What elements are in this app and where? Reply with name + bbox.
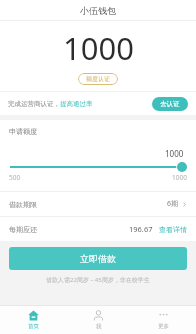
staticText: 借款人需22周岁－45周岁，非在校学生 <box>46 276 150 284</box>
staticText: 申请额度 <box>9 127 37 136</box>
staticText: 额度认证 <box>86 75 110 83</box>
staticText: 完成运营商认证， <box>8 100 60 108</box>
staticText: 小伍钱包 <box>80 5 116 16</box>
staticText: 6期 <box>167 199 179 209</box>
button[interactable]: 额度认证 <box>78 73 118 85</box>
button[interactable]: 借款期限 <box>0 192 196 216</box>
staticText: 1000 <box>63 27 134 69</box>
button[interactable]: More <box>131 306 196 334</box>
staticText: 更多 <box>158 323 169 330</box>
staticText: 去认证 <box>160 100 180 108</box>
staticText: 1000 <box>165 148 184 159</box>
staticText: 借款期限 <box>9 200 37 209</box>
staticText: 196.67 <box>129 224 153 234</box>
staticText: 1000 <box>172 173 187 182</box>
staticText: 每期应还 <box>9 225 37 234</box>
button[interactable]: 查看详情 <box>159 225 187 234</box>
button[interactable]: 立即借款 <box>9 247 187 270</box>
button[interactable]: Profile <box>66 306 131 334</box>
button[interactable]: Home <box>0 306 66 334</box>
button[interactable]: 去认证 <box>152 97 188 111</box>
staticText: 查看详情 <box>159 225 187 234</box>
staticText: 我 <box>96 323 102 330</box>
staticText: 首页 <box>28 323 39 330</box>
staticText: 500 <box>9 173 21 182</box>
button[interactable]: Loan amount slider <box>0 161 196 173</box>
staticText: 立即借款 <box>80 253 116 264</box>
staticText: 提高通过率 <box>60 100 93 108</box>
